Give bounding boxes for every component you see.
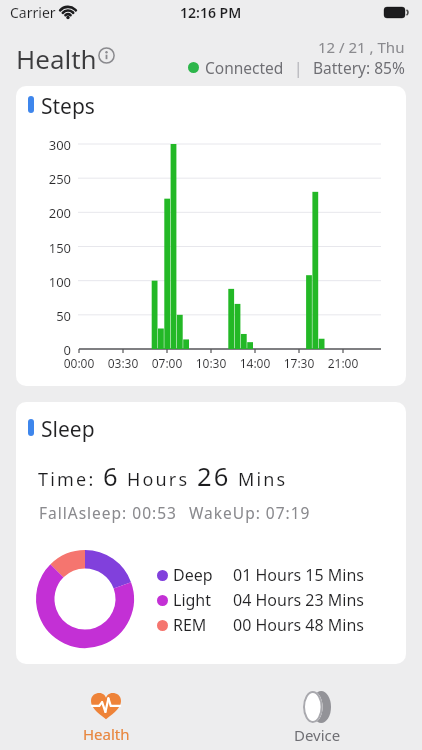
staticText: Hours [120, 467, 197, 492]
button[interactable]: Sleep [16, 402, 406, 664]
staticText: 150 [30, 239, 71, 257]
staticText: 00:00 [57, 355, 101, 371]
staticText: 21:00 [321, 355, 365, 371]
staticText: 03:30 [101, 355, 145, 371]
staticText: Light [173, 589, 212, 611]
staticText: Health [16, 41, 97, 76]
staticText: 12:16 PM [180, 3, 242, 22]
staticText: FallAsleep: 00:53 [39, 502, 177, 523]
staticText: Device [294, 725, 341, 745]
staticText: 250 [30, 170, 71, 188]
staticText: WakeUp: 07:19 [189, 502, 311, 523]
staticText: Mins [231, 467, 288, 492]
staticText: Connected [205, 57, 284, 78]
staticText: 17:30 [277, 355, 321, 371]
staticText: 200 [30, 204, 71, 222]
staticText: Health [83, 724, 130, 744]
staticText: Carrier [10, 3, 56, 22]
staticText: Steps [41, 92, 95, 121]
staticText: 50 [30, 307, 71, 325]
staticText: 10:30 [189, 355, 233, 371]
staticText: 100 [30, 273, 71, 291]
staticText: 04 Hours 23 Mins [233, 589, 364, 611]
staticText: 6 [103, 459, 120, 494]
staticText: 26 [197, 459, 231, 494]
button[interactable]: Device [286, 691, 348, 750]
staticText: 0 [30, 341, 71, 359]
staticText: Time: [38, 467, 103, 492]
button[interactable]: Steps [16, 86, 406, 386]
staticText: 00 Hours 48 Mins [233, 614, 364, 636]
staticText: 07:00 [145, 355, 189, 371]
staticText: Sleep [41, 415, 95, 444]
staticText: 300 [30, 136, 71, 154]
staticText: Battery: 85% [313, 57, 405, 78]
staticText: 01 Hours 15 Mins [233, 564, 364, 586]
button[interactable]: Health [75, 693, 137, 750]
staticText: 12 / 21 , Thu [318, 37, 405, 57]
staticText: | [294, 57, 303, 78]
staticText: REM [173, 614, 207, 636]
staticText: 14:00 [233, 355, 277, 371]
staticText: Deep [173, 564, 213, 586]
